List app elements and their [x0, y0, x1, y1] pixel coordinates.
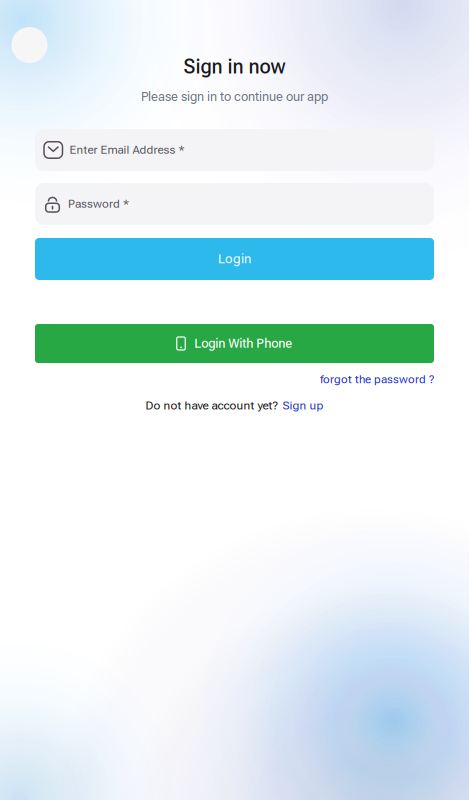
- button[interactable]: Login: [35, 238, 434, 280]
- button[interactable]: Enter Email Address *: [35, 129, 434, 171]
- staticText: Enter Email Address *: [69, 143, 184, 157]
- button[interactable]: forgot the password ?: [320, 373, 434, 386]
- staticText: Do not have account yet?: [145, 399, 278, 412]
- button[interactable]: Password *: [35, 183, 434, 225]
- staticText: Sign in now: [183, 55, 285, 78]
- button[interactable]: Sign up: [282, 399, 323, 412]
- staticText: Password *: [68, 197, 129, 211]
- staticText: Login: [218, 251, 251, 266]
- staticText: Please sign in to continue our app: [141, 89, 328, 104]
- staticText: forgot the password ?: [320, 373, 434, 386]
- staticText: Login With Phone: [194, 336, 292, 351]
- button[interactable]: Login With Phone: [35, 324, 434, 363]
- staticText: Sign up: [282, 399, 323, 412]
